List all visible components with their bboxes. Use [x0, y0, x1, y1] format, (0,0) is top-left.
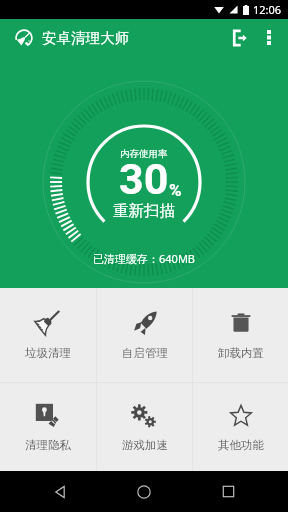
button[interactable]: 垃圾清理: [0, 288, 96, 382]
staticText: 重新扫描: [113, 201, 175, 221]
staticText: 卸载内置: [218, 346, 264, 360]
staticText: 安卓清理大师: [42, 29, 129, 47]
button[interactable]: 自启管理: [97, 288, 192, 382]
button[interactable]: App transfer: [223, 19, 255, 56]
staticText: 清理隐私: [25, 438, 71, 452]
button[interactable]: Home: [120, 471, 168, 512]
button[interactable]: Back: [36, 471, 84, 512]
button[interactable]: 清理隐私: [0, 383, 96, 471]
button[interactable]: More options: [255, 19, 283, 56]
button[interactable]: Recent apps: [204, 471, 252, 512]
staticText: 游戏加速: [122, 438, 168, 452]
staticText: 其他功能: [218, 438, 264, 452]
staticText: 自启管理: [122, 346, 168, 360]
button[interactable]: 其他功能: [193, 383, 288, 471]
staticText: 垃圾清理: [25, 346, 71, 360]
staticText: 12:06: [253, 2, 282, 17]
button[interactable]: 卸载内置: [193, 288, 288, 382]
staticText: 内存使用率: [120, 148, 168, 160]
staticText: 30: [119, 154, 169, 204]
staticText: 已清理缓存：640MB: [93, 251, 196, 266]
button[interactable]: 游戏加速: [97, 383, 192, 471]
staticText: %: [169, 180, 182, 200]
button[interactable]: 重新扫描: [113, 201, 175, 221]
